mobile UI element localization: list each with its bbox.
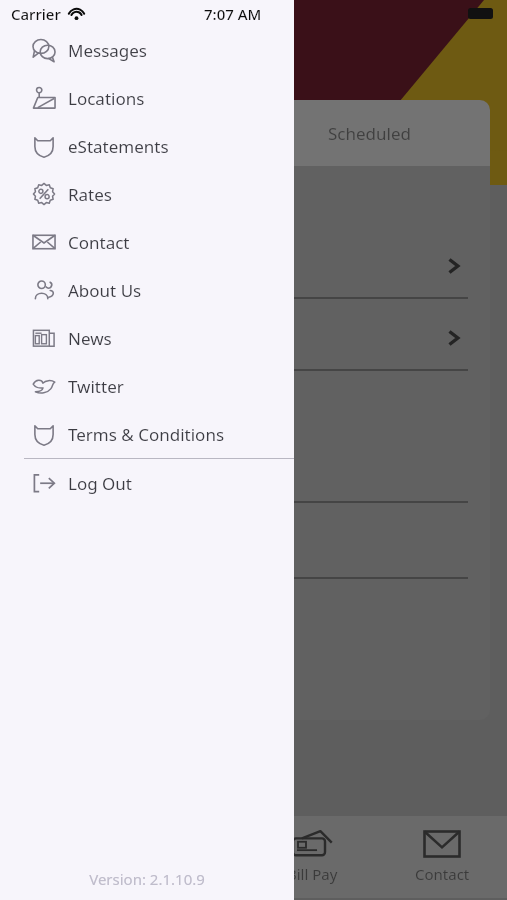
- staticText: News: [68, 327, 112, 350]
- staticText: About Us: [68, 279, 142, 302]
- staticText: Locations: [68, 87, 145, 110]
- other: Wi-Fi: [68, 8, 85, 21]
- button[interactable]: Messages: [0, 26, 294, 74]
- button[interactable]: [248, 306, 490, 370]
- button[interactable]: Log Out: [0, 459, 294, 507]
- staticText: Rates: [68, 183, 112, 206]
- button[interactable]: Contact: [377, 816, 507, 898]
- button[interactable]: Rates: [0, 170, 294, 218]
- staticText: Scheduled: [328, 122, 411, 145]
- staticText: Log Out: [68, 472, 132, 495]
- button[interactable]: Scheduled: [248, 100, 490, 166]
- button[interactable]: Terms & Conditions: [0, 410, 294, 458]
- button[interactable]: [248, 234, 490, 298]
- button[interactable]: News: [0, 314, 294, 362]
- button[interactable]: About Us: [0, 266, 294, 314]
- staticText: eStatements: [68, 135, 169, 158]
- staticText: Messages: [68, 39, 148, 62]
- staticText: Twitter: [68, 375, 124, 398]
- staticText: Contact: [415, 864, 470, 884]
- staticText: Contact: [68, 231, 130, 254]
- staticText: Carrier: [11, 4, 61, 24]
- button[interactable]: Contact: [0, 218, 294, 266]
- staticText: Terms & Conditions: [68, 423, 225, 446]
- button[interactable]: Bill Pay: [247, 816, 377, 898]
- button[interactable]: Twitter: [0, 362, 294, 410]
- button[interactable]: eStatements: [0, 122, 294, 170]
- staticText: Bill Pay: [287, 864, 338, 884]
- staticText: 7:07 AM: [204, 4, 262, 24]
- button[interactable]: Locations: [0, 74, 294, 122]
- staticText: Version: 2.1.10.9: [89, 869, 205, 889]
